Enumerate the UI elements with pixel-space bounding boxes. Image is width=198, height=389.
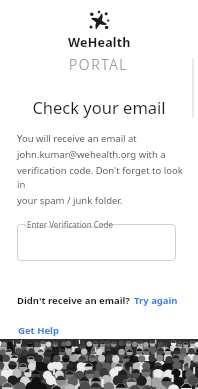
button[interactable]: Enter Verification Code bbox=[17, 219, 176, 261]
staticText: Get Help bbox=[18, 324, 59, 337]
staticText: Enter Verification Code bbox=[27, 219, 113, 230]
button[interactable]: Try again bbox=[134, 293, 178, 308]
staticText: verification code. Don't forget to look … bbox=[17, 164, 184, 191]
staticText: john.kumar@wehealth.org with a bbox=[17, 148, 166, 161]
staticText: PORTAL bbox=[69, 55, 129, 74]
staticText: Check your email bbox=[32, 96, 166, 118]
staticText: Try again bbox=[134, 294, 178, 307]
staticText: WeHealth bbox=[68, 34, 131, 51]
button[interactable]: Get Help bbox=[17, 322, 60, 339]
staticText: Didn't receive an email? bbox=[17, 294, 130, 307]
staticText: You will receive an email at bbox=[17, 132, 137, 145]
staticText: your spam / junk folder. bbox=[17, 194, 123, 207]
